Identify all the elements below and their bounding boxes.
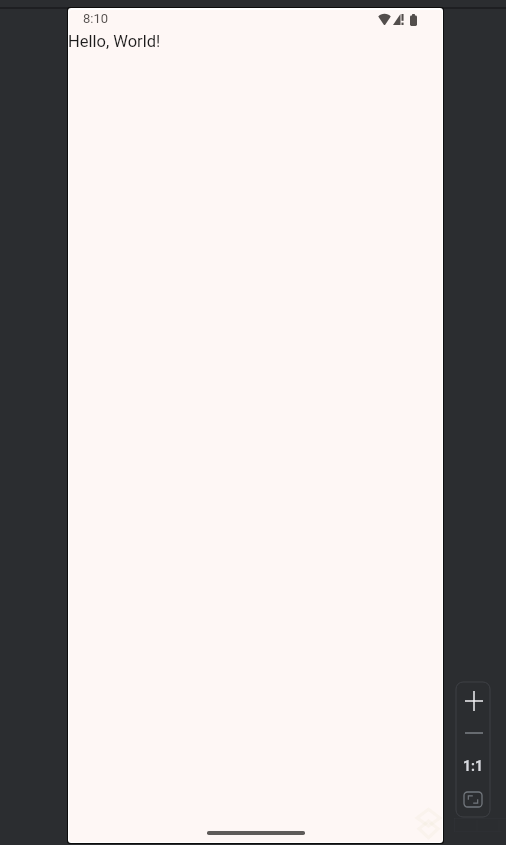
button[interactable]: Zoom out — [458, 718, 489, 748]
button[interactable]: Zoom in — [458, 686, 489, 715]
staticText: 1:1 — [463, 758, 484, 774]
button[interactable]: 1:1 — [458, 751, 488, 781]
staticText: 8:10 — [83, 11, 109, 26]
button[interactable]: Fit to window — [458, 784, 488, 814]
staticText: Hello, World! — [69, 32, 161, 51]
